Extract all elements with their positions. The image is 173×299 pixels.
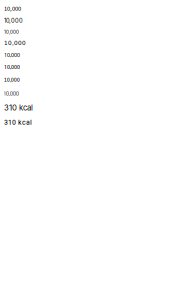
staticText: 310 kcal [4,103,33,112]
staticText: 10,000 [4,51,20,58]
staticText: 310 kcal [4,117,32,127]
staticText: 10,000 [4,4,21,12]
staticText: 10,000 [4,75,20,84]
staticText: 10,000 [4,17,23,24]
staticText: 10,000 [4,63,20,70]
staticText: 10,000 [4,29,19,35]
staticText: 10,000 [4,40,26,46]
staticText: 10,000 [4,89,19,98]
